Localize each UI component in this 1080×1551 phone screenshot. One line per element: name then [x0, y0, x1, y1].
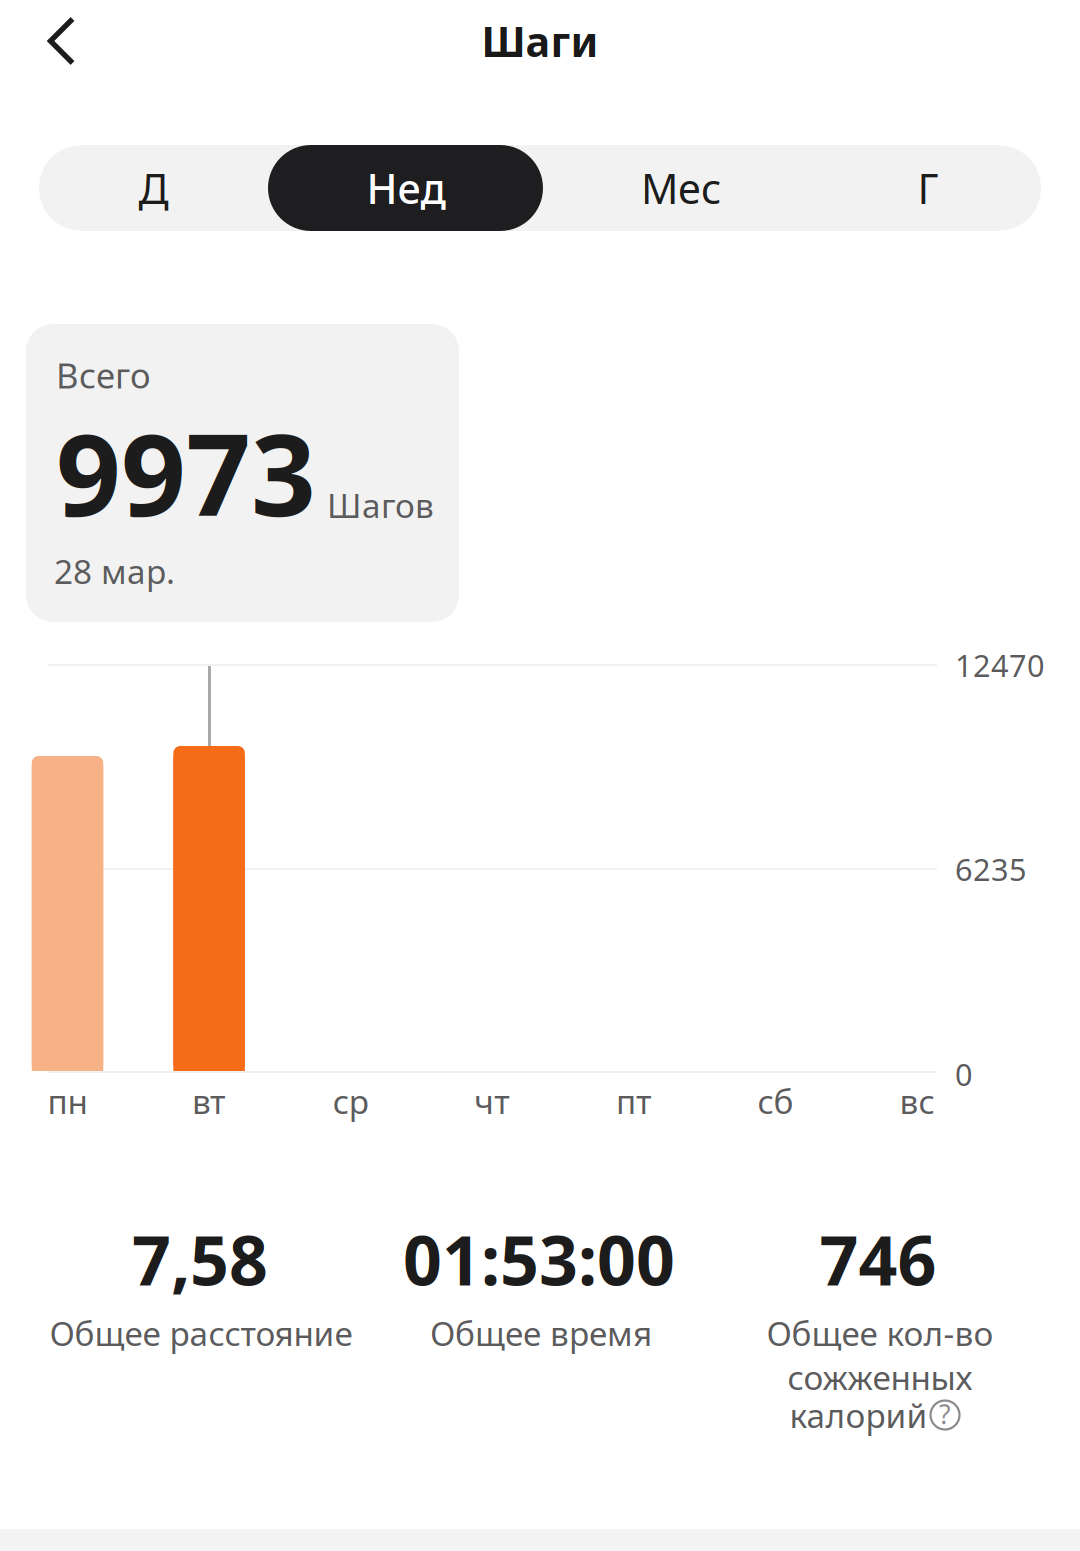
staticText: Общее кол-во: [766, 1311, 993, 1355]
staticText: пт: [616, 1079, 652, 1123]
staticText: вт: [192, 1079, 226, 1123]
staticText: 7,58: [132, 1214, 268, 1304]
staticText: Мес: [641, 161, 721, 215]
staticText: 746: [819, 1214, 936, 1304]
staticText: Всего: [56, 352, 151, 398]
staticText: Шагов: [327, 483, 434, 527]
button[interactable]: Назад: [0, 0, 102, 81]
staticText: калорий: [789, 1393, 927, 1437]
staticText: Общее время: [430, 1311, 652, 1355]
staticText: 01:53:00: [403, 1214, 675, 1304]
staticText: ср: [333, 1079, 369, 1123]
button[interactable]: Д: [38, 145, 268, 231]
button[interactable]: Мес: [566, 145, 796, 231]
staticText: 12470: [955, 645, 1045, 685]
staticText: чт: [474, 1079, 510, 1123]
button[interactable]: Подробнее о сожженных калориях: [929, 1399, 960, 1430]
button[interactable]: Г: [813, 145, 1043, 231]
staticText: 9973: [56, 397, 316, 547]
staticText: Д: [138, 161, 168, 215]
staticText: Общее расстояние: [49, 1311, 352, 1355]
staticText: Г: [917, 161, 938, 215]
staticText: Шаги: [481, 14, 598, 68]
staticText: ?: [939, 1396, 951, 1432]
staticText: 0: [955, 1054, 973, 1094]
button[interactable]: Нед: [291, 145, 521, 231]
staticText: вс: [900, 1079, 935, 1123]
staticText: сб: [757, 1079, 793, 1123]
staticText: 28 мар.: [54, 549, 175, 593]
staticText: Нед: [366, 161, 445, 215]
staticText: пн: [47, 1079, 87, 1123]
staticText: 6235: [955, 849, 1027, 889]
staticText: сожженных: [787, 1355, 972, 1399]
